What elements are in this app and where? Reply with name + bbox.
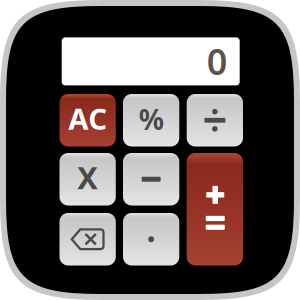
button[interactable]: Multiply bbox=[59, 153, 116, 205]
button[interactable]: Decimal point bbox=[123, 213, 179, 265]
staticText: % bbox=[139, 101, 164, 138]
button[interactable]: Plus equals bbox=[187, 153, 243, 265]
button[interactable]: Delete bbox=[59, 213, 116, 265]
staticText: X bbox=[77, 157, 98, 198]
staticText: AC bbox=[68, 99, 107, 138]
button[interactable]: All clear bbox=[59, 94, 116, 146]
button[interactable]: Divide bbox=[187, 94, 243, 146]
staticText: 0 bbox=[207, 37, 228, 85]
button[interactable]: Percent bbox=[123, 94, 179, 146]
button[interactable]: Minus bbox=[123, 153, 179, 205]
